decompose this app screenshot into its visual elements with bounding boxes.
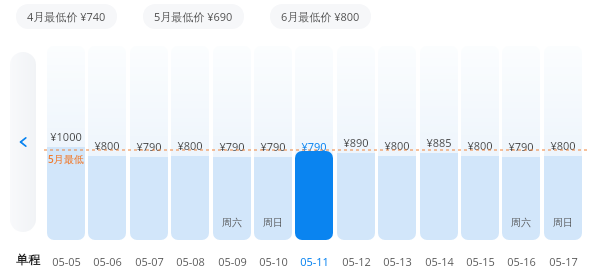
staticText: 周日 bbox=[553, 216, 573, 229]
staticText: ¥790 bbox=[508, 139, 534, 154]
staticText: ¥790 bbox=[136, 139, 162, 154]
staticText: 6月最低价 ¥800 bbox=[281, 9, 360, 24]
staticText: 周六 bbox=[511, 216, 531, 229]
staticText: ¥1000 bbox=[50, 129, 82, 144]
button[interactable]: 4月最低价 ¥740 bbox=[16, 4, 117, 29]
button[interactable] bbox=[502, 46, 540, 240]
staticText: 05-16 bbox=[507, 254, 536, 269]
staticText: ¥800 bbox=[177, 138, 203, 153]
staticText: ¥885 bbox=[426, 135, 452, 150]
button[interactable]: 上一周 bbox=[10, 52, 36, 232]
button[interactable] bbox=[461, 46, 499, 240]
button[interactable] bbox=[420, 46, 458, 240]
staticText: ¥800 bbox=[384, 138, 410, 153]
staticText: 05-05 bbox=[52, 254, 81, 269]
button[interactable] bbox=[378, 46, 416, 240]
staticText: 周六 bbox=[222, 216, 242, 229]
button[interactable] bbox=[544, 46, 582, 240]
staticText: 5月最低 bbox=[48, 152, 84, 166]
button[interactable] bbox=[47, 46, 85, 240]
staticText: 05-11 bbox=[300, 254, 329, 269]
staticText: 单程 bbox=[16, 252, 40, 267]
staticText: 05-06 bbox=[93, 254, 122, 269]
staticText: 05-07 bbox=[135, 254, 164, 269]
staticText: 05-08 bbox=[176, 254, 205, 269]
staticText: ¥800 bbox=[550, 138, 576, 153]
button[interactable]: 5月最低价 ¥690 bbox=[143, 4, 244, 29]
staticText: 05-17 bbox=[549, 254, 578, 269]
staticText: ¥790 bbox=[260, 139, 286, 154]
staticText: 05-14 bbox=[425, 254, 454, 269]
staticText: ¥890 bbox=[343, 135, 369, 150]
button[interactable] bbox=[88, 46, 126, 240]
staticText: ¥800 bbox=[467, 138, 493, 153]
button[interactable] bbox=[337, 46, 375, 240]
staticText: 05-10 bbox=[259, 254, 288, 269]
staticText: 5月最低价 ¥690 bbox=[154, 9, 233, 24]
button[interactable] bbox=[213, 46, 251, 240]
staticText: 05-12 bbox=[342, 254, 371, 269]
staticText: 4月最低价 ¥740 bbox=[27, 9, 106, 24]
staticText: ¥790 bbox=[219, 139, 245, 154]
button[interactable] bbox=[295, 46, 333, 240]
staticText: 05-09 bbox=[218, 254, 247, 269]
button[interactable] bbox=[130, 46, 168, 240]
staticText: ¥790 bbox=[301, 139, 327, 154]
button[interactable] bbox=[171, 46, 209, 240]
button[interactable]: 单程 bbox=[16, 252, 40, 267]
staticText: 周日 bbox=[263, 216, 283, 229]
button[interactable] bbox=[254, 46, 292, 240]
staticText: 05-15 bbox=[466, 254, 495, 269]
staticText: 05-13 bbox=[383, 254, 412, 269]
button[interactable]: 6月最低价 ¥800 bbox=[270, 4, 371, 29]
staticText: ¥800 bbox=[94, 138, 120, 153]
